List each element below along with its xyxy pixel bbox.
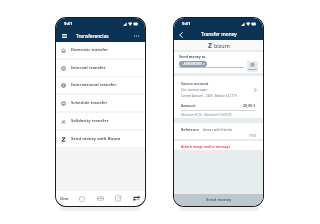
button[interactable]: Back [176,30,185,39]
button[interactable]: Security [73,191,91,206]
staticText: +34600000000 [182,62,202,66]
staticText: Cta. nomina open [181,88,208,92]
staticText: 20,00 € [243,103,256,108]
button[interactable]: Schedule transfer [56,95,145,111]
button[interactable]: Source account [174,76,263,100]
button[interactable]: Transfers [127,191,145,206]
staticText: Send money with Bizum [71,136,121,142]
button[interactable]: International transfer [56,77,145,93]
staticText: Attach image and/or message [181,144,231,148]
button[interactable]: Solidarity transfer [56,113,145,129]
button[interactable]: Domestic transfer [56,42,145,58]
staticText: 9:41 [182,21,191,27]
button[interactable]: Cards [91,191,109,206]
button[interactable]: Attach image and/or message [174,141,263,150]
button[interactable]: Send money [174,194,263,206]
button[interactable]: More options [132,31,141,40]
button[interactable]: Send money with Bizum [56,131,145,147]
staticText: Minimum €0,50 - Maximum €1.000,00 [181,113,232,117]
button[interactable]: One [56,191,73,206]
staticText: One [60,196,69,202]
staticText: Send money to [179,54,206,59]
staticText: International transfer [71,82,117,88]
staticText: Source account [181,81,209,86]
button[interactable]: Internal transfer [56,60,145,76]
staticText: Solidarity transfer [71,118,109,124]
staticText: Transfer money [201,31,237,38]
button[interactable]: Agenda [247,61,258,72]
staticText: Schedule transfer [71,100,108,106]
button[interactable]: +34600000000 [179,61,207,67]
staticText: Send money [206,197,232,203]
staticText: Current Account ...7400 - Balance 612,77… [181,94,238,98]
staticText: 19/35 [249,134,257,138]
button[interactable]: Menu [60,31,69,40]
staticText: dinner with friends [203,128,232,132]
staticText: Amount [181,103,196,108]
staticText: Domestic transfer [71,47,109,53]
button[interactable]: Reference [174,123,263,139]
staticText: Transferencias [76,33,109,39]
button[interactable]: Messages [109,191,127,206]
staticText: Agenda [248,68,257,71]
staticText: bizum [214,42,230,49]
staticText: 9:41 [64,21,73,27]
staticText: Reference [181,127,200,132]
staticText: Internal transfer [71,65,106,71]
